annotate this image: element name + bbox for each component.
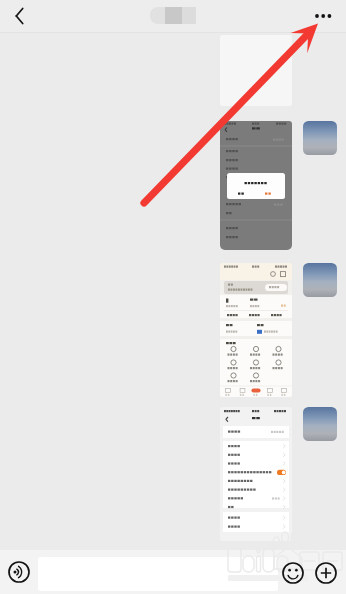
button[interactable]: Screenshot image 4 <box>220 407 292 541</box>
button[interactable]: Contact avatar <box>303 121 337 155</box>
button[interactable]: Voice input <box>5 558 33 586</box>
button[interactable]: Screenshot image 2 <box>220 121 292 250</box>
button[interactable]: Emoji <box>279 559 307 587</box>
button[interactable]: Back <box>0 0 40 32</box>
button[interactable]: More options <box>306 1 346 33</box>
button[interactable]: Screenshot image 1 <box>220 35 292 106</box>
button[interactable]: Contact avatar <box>303 407 337 441</box>
button[interactable]: Screenshot image 3 <box>220 263 292 397</box>
button[interactable]: Contact avatar <box>303 263 337 297</box>
button[interactable] <box>38 557 278 591</box>
button[interactable]: More functions <box>312 559 340 587</box>
